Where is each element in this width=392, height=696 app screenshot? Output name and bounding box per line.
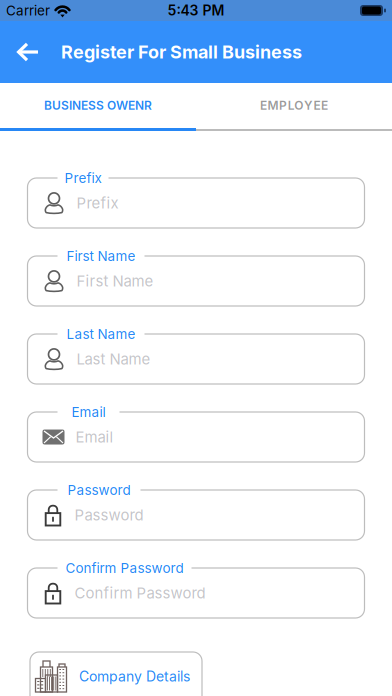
staticText: Password: [74, 506, 143, 524]
staticText: EMPLOYEE: [260, 98, 328, 113]
button[interactable]: EMPLOYEE: [196, 83, 392, 128]
staticText: 5:43 PM: [167, 2, 224, 19]
staticText: Carrier: [6, 2, 50, 19]
staticText: Prefix: [64, 170, 101, 186]
staticText: Email: [71, 404, 105, 420]
button[interactable]: First Name: [27, 248, 364, 306]
staticText: Password: [67, 482, 130, 498]
button[interactable]: Prefix: [27, 170, 364, 228]
staticText: Confirm Password: [74, 584, 205, 602]
staticText: Email: [75, 428, 113, 446]
staticText: Last Name: [76, 350, 150, 368]
staticText: Last Name: [66, 326, 135, 342]
staticText: Confirm Password: [65, 560, 183, 576]
button[interactable]: Company Details: [30, 652, 202, 696]
button[interactable]: Email: [27, 404, 364, 462]
staticText: Register For Small Business: [61, 41, 302, 63]
button[interactable]: Last Name: [27, 326, 364, 384]
button[interactable]: Password: [27, 482, 364, 540]
staticText: Company Details: [79, 668, 190, 685]
button[interactable]: Confirm Password: [27, 560, 364, 618]
staticText: Prefix: [76, 194, 118, 212]
staticText: First Name: [76, 272, 153, 290]
staticText: BUSINESS OWENR: [44, 98, 152, 113]
button[interactable]: Back: [0, 42, 39, 61]
button[interactable]: BUSINESS OWENR: [0, 83, 196, 128]
staticText: First Name: [66, 248, 135, 264]
